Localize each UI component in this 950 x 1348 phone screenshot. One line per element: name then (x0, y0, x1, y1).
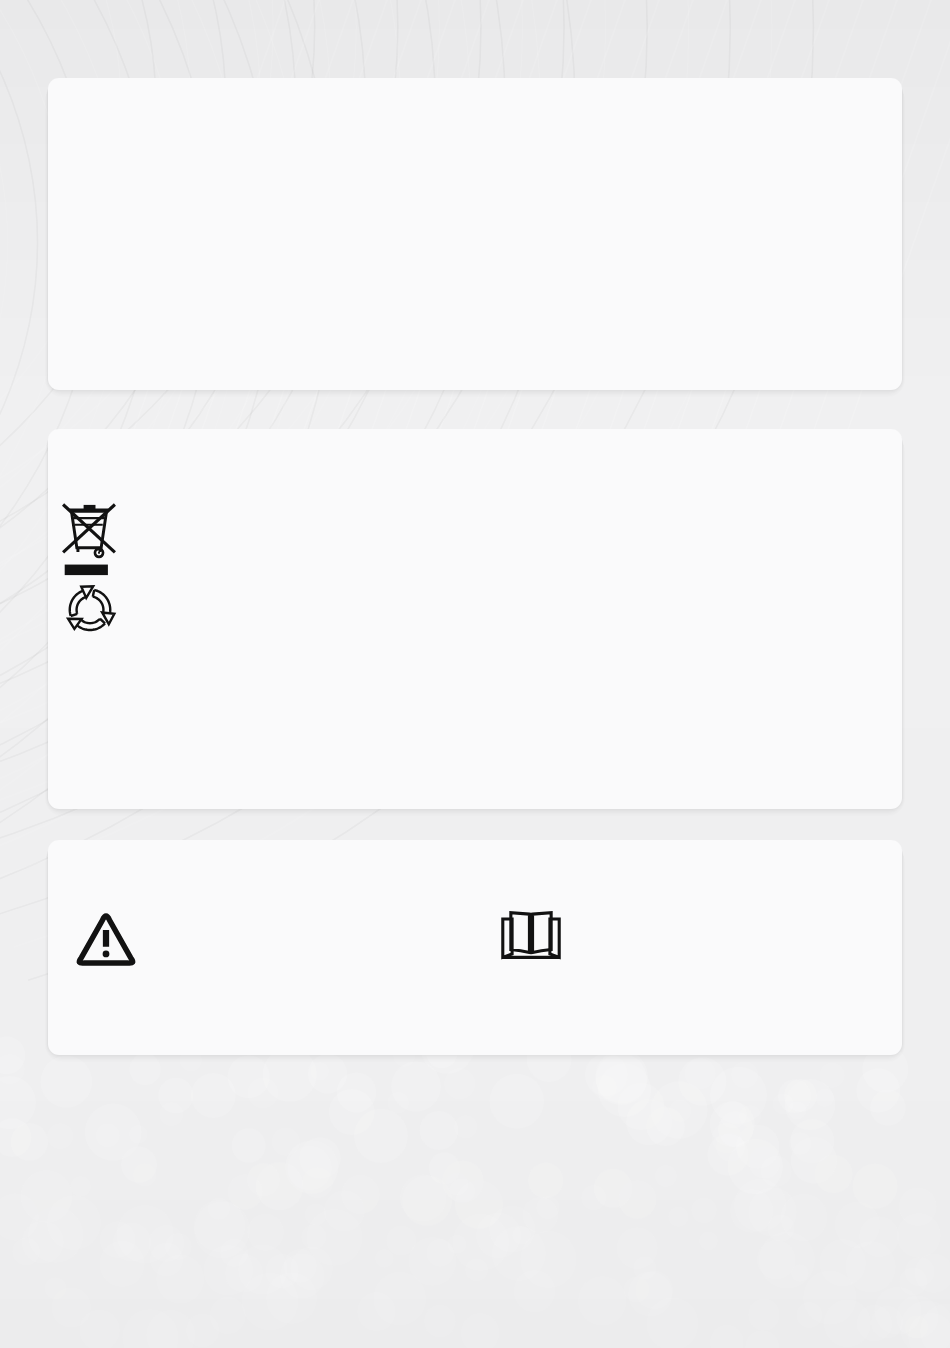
button[interactable]: Do not dispose with household waste (48, 429, 902, 809)
button[interactable]: Read the instruction manual (500, 906, 562, 964)
button[interactable]: Do not dispose with household waste (62, 501, 116, 579)
button[interactable]: Recyclable (64, 586, 116, 630)
button[interactable]: Warning (74, 910, 138, 966)
button[interactable]: Warning (48, 840, 902, 1055)
